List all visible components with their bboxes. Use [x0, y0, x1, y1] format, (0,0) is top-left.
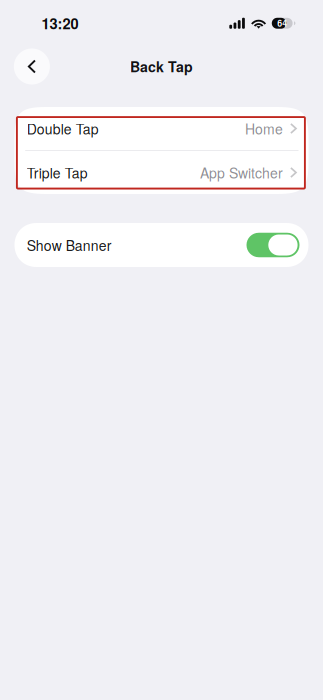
button[interactable]: Back	[14, 48, 50, 84]
staticText: App Switcher	[200, 162, 283, 182]
staticText: Double Tap	[27, 118, 99, 138]
button[interactable]: Triple Tap	[14, 151, 308, 194]
staticText: Home	[245, 118, 283, 138]
staticText: Triple Tap	[27, 162, 88, 182]
staticText: Show Banner	[27, 235, 112, 255]
staticText: 13:20	[41, 13, 78, 34]
staticText: Back Tap	[130, 56, 193, 77]
button[interactable]: Double Tap	[14, 107, 308, 150]
staticText: 64	[277, 17, 287, 29]
button[interactable]: Show Banner	[246, 233, 299, 257]
